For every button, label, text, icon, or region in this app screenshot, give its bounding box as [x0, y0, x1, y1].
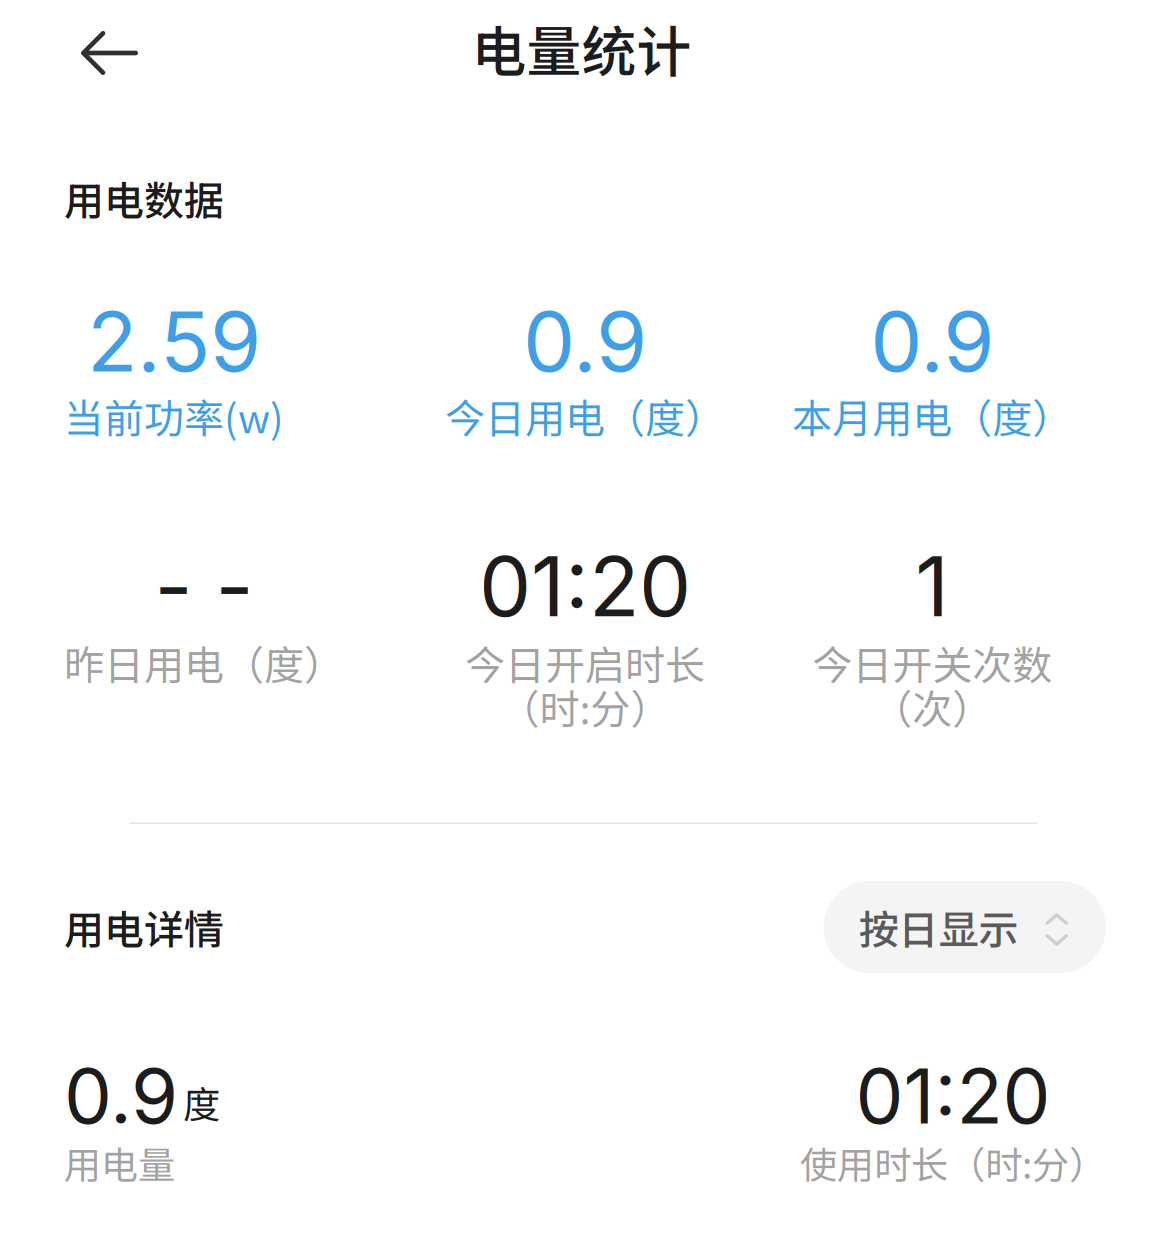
staticText: 今日开启时长	[465, 634, 705, 691]
staticText: 用电数据	[64, 169, 224, 227]
staticText: 昨日用电（度）	[64, 634, 344, 691]
staticText: 0.9	[523, 291, 647, 391]
staticText: 度	[183, 1075, 220, 1129]
staticText: 2.59	[87, 291, 261, 391]
staticText: 按日显示	[858, 898, 1018, 956]
staticText: 0.9	[64, 1050, 178, 1142]
staticText: （次）	[872, 678, 992, 735]
staticText: 使用时长（时:分）	[800, 1135, 1106, 1189]
staticText: 本月用电（度）	[792, 387, 1072, 445]
staticText: 1	[915, 536, 949, 636]
staticText: 01:20	[479, 536, 691, 636]
staticText: 今日用电（度）	[445, 387, 725, 445]
staticText: - -	[154, 536, 253, 636]
staticText: 今日开关次数	[812, 634, 1052, 691]
staticText: 0.9	[870, 291, 994, 391]
staticText: （时:分）	[499, 678, 670, 735]
staticText: 当前功率(w)	[64, 387, 284, 445]
staticText: 01:20	[855, 1050, 1050, 1142]
button[interactable]: 按日显示	[823, 881, 1106, 973]
button[interactable]: Back	[81, 31, 138, 75]
staticText: 电量统计	[472, 8, 692, 87]
staticText: 用电详情	[64, 898, 224, 956]
staticText: 用电量	[64, 1135, 175, 1189]
